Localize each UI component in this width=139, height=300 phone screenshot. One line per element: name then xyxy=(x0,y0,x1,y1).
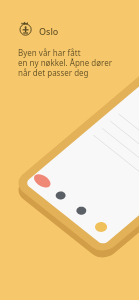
staticText: Byen vår har fått en ny nøkkel. Åpne dør… xyxy=(18,47,113,78)
other: Oslo kommune xyxy=(19,20,33,36)
staticText: Oslo xyxy=(39,25,59,37)
